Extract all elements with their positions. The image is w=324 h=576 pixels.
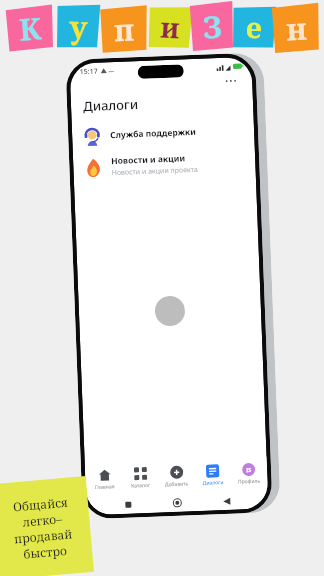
button[interactable]: IS [231, 460, 266, 488]
button[interactable]: Новости и акции [73, 145, 256, 185]
button[interactable]: Служба поддержки [72, 115, 255, 152]
button[interactable]: Каталог [123, 465, 158, 492]
staticText: легко– [22, 510, 63, 530]
staticText: н [285, 7, 308, 49]
button[interactable]: Главная [87, 466, 122, 493]
staticText: Диалоги [83, 95, 139, 115]
button[interactable]: Назад [219, 494, 233, 508]
button[interactable]: Обзор [121, 497, 136, 512]
staticText: у [68, 6, 89, 47]
staticText: п [113, 9, 135, 50]
staticText: и [159, 7, 181, 46]
staticText: IS [246, 466, 252, 473]
staticText: Общайся [12, 494, 68, 514]
staticText: К [18, 7, 42, 50]
staticText: З [202, 5, 223, 47]
staticText: Новости и акции [111, 152, 186, 167]
staticText: е [245, 8, 263, 46]
staticText: продавай [13, 525, 73, 546]
staticText: Добавить [164, 480, 189, 488]
staticText: Каталог [130, 482, 151, 490]
button[interactable]: Домой [170, 496, 185, 510]
staticText: быстро [22, 542, 68, 562]
button[interactable]: Ещё [222, 75, 240, 86]
staticText: 15:17 [79, 67, 98, 77]
staticText: Служба поддержки [110, 126, 196, 141]
staticText: Главная [94, 483, 115, 491]
button[interactable]: Диалоги [195, 462, 230, 489]
staticText: Новости и акции проекта [111, 165, 199, 178]
staticText: Диалоги [202, 479, 224, 487]
button[interactable]: Добавить [159, 463, 194, 490]
staticText: Профиль [237, 478, 261, 485]
